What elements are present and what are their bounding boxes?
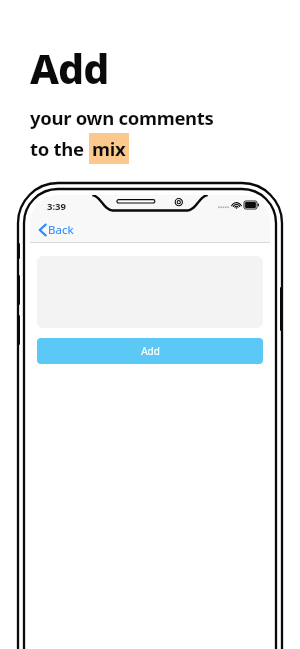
- staticText: Add: [30, 40, 109, 96]
- staticText: mix: [92, 136, 126, 161]
- staticText: Add: [141, 344, 160, 358]
- staticText: 3:39: [47, 200, 66, 213]
- button[interactable]: Add: [37, 338, 263, 364]
- button[interactable]: Back: [35, 219, 78, 241]
- staticText: to the: [30, 136, 89, 161]
- staticText: your own comments: [30, 105, 214, 130]
- staticText: Back: [48, 222, 74, 238]
